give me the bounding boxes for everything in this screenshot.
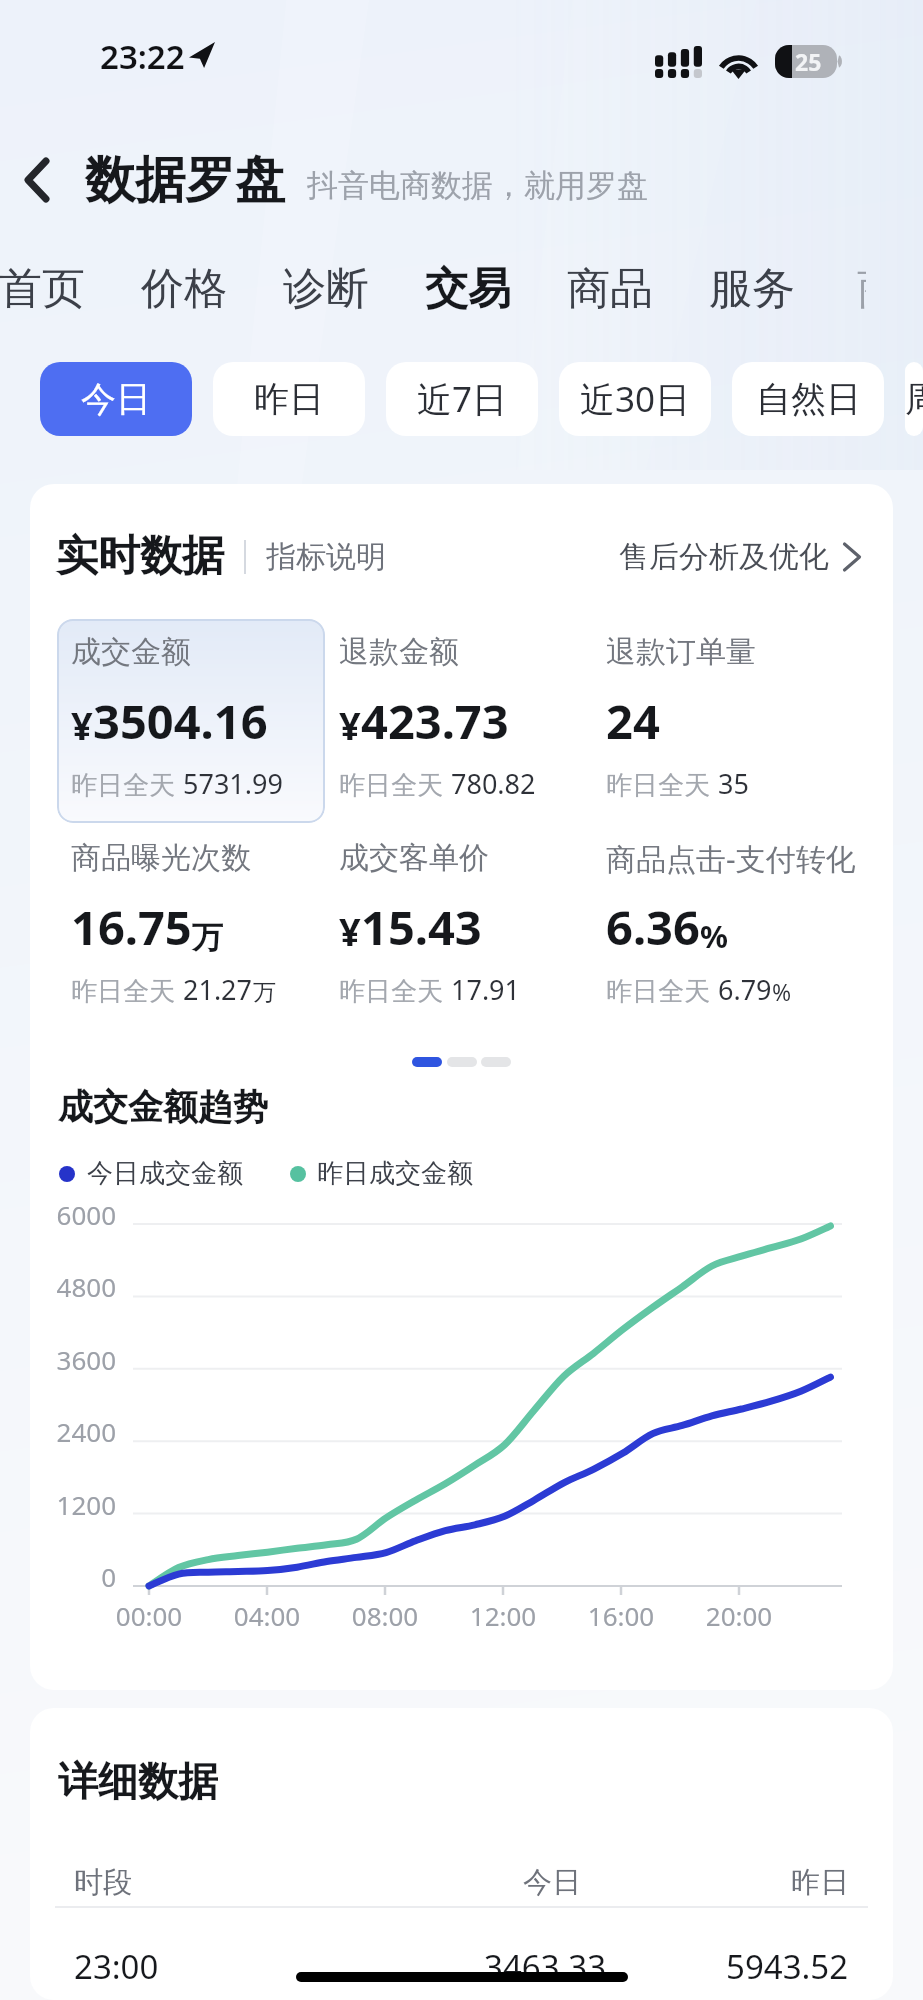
- button[interactable]: 退款金额: [325, 619, 592, 823]
- button[interactable]: 商品曝光次数: [57, 825, 325, 1029]
- staticText: 1200: [30, 1487, 116, 1522]
- staticText: 数据罗盘: [85, 149, 285, 212]
- staticText: 万: [192, 918, 223, 957]
- button[interactable]: 商品: [539, 248, 681, 330]
- staticText: 今日: [523, 1864, 581, 1901]
- staticText: ¥: [71, 699, 93, 751]
- staticText: 成交金额: [71, 633, 191, 671]
- staticText: 昨日全天: [71, 975, 175, 1008]
- staticText: 今日: [81, 377, 151, 421]
- staticText: 3600: [30, 1342, 116, 1377]
- staticText: 首页: [0, 262, 85, 316]
- staticText: 3463.33: [484, 1944, 607, 1989]
- staticText: 23:22: [100, 34, 185, 79]
- staticText: 23:00: [74, 1944, 159, 1989]
- button[interactable]: 成交金额: [57, 619, 325, 823]
- staticText: 15.43: [361, 895, 482, 959]
- button[interactable]: 自然日: [732, 362, 884, 436]
- staticText: 售后分析及优化: [619, 538, 829, 576]
- button[interactable]: 近30日: [559, 362, 711, 436]
- staticText: 780.82: [451, 765, 536, 802]
- staticText: 3504.16: [93, 689, 268, 753]
- staticText: 商: [857, 262, 866, 316]
- staticText: 6.36: [606, 895, 700, 959]
- button[interactable]: 周: [905, 362, 923, 436]
- button[interactable]: 诊断: [255, 248, 397, 330]
- staticText: 5943.52: [726, 1944, 849, 1989]
- staticText: 00:00: [89, 1598, 209, 1633]
- staticText: 诊断: [283, 262, 369, 316]
- staticText: 万: [253, 978, 276, 1007]
- staticText: 详细数据: [58, 1756, 218, 1804]
- button[interactable]: 成交客单价: [325, 825, 592, 1029]
- staticText: 服务: [709, 262, 795, 316]
- staticText: 自然日: [756, 377, 861, 421]
- staticText: 商品: [567, 262, 653, 316]
- staticText: 抖音电商数据，就用罗盘: [307, 166, 648, 205]
- staticText: 0: [30, 1559, 116, 1594]
- staticText: 时段: [74, 1864, 132, 1901]
- staticText: 5731.99: [183, 765, 283, 802]
- staticText: 价格: [141, 262, 227, 316]
- staticText: 17.91: [451, 971, 521, 1008]
- staticText: 423.73: [361, 689, 509, 753]
- staticText: 昨日全天: [606, 769, 710, 802]
- staticText: 6.79: [718, 971, 772, 1008]
- staticText: 24: [606, 689, 660, 753]
- staticText: 商品点击-支付转化: [606, 838, 856, 879]
- staticText: %: [700, 915, 728, 957]
- staticText: 昨日: [791, 1864, 849, 1901]
- staticText: 21.27: [183, 971, 253, 1008]
- staticText: 指标说明: [266, 538, 386, 576]
- staticText: 2400: [30, 1414, 116, 1449]
- staticText: 商品曝光次数: [71, 839, 251, 877]
- button[interactable]: 售后分析及优化: [619, 538, 861, 576]
- button[interactable]: 退款订单量: [592, 619, 893, 823]
- button[interactable]: 近7日: [386, 362, 538, 436]
- button[interactable]: 价格: [113, 248, 255, 330]
- staticText: 昨日: [254, 377, 324, 421]
- staticText: 20:00: [679, 1598, 799, 1633]
- button[interactable]: 交易: [397, 248, 539, 330]
- button[interactable]: 商: [823, 248, 894, 330]
- staticText: 近7日: [417, 375, 508, 423]
- button[interactable]: 服务: [681, 248, 823, 330]
- staticText: 交易: [425, 262, 511, 316]
- staticText: ¥: [339, 905, 361, 957]
- staticText: 35: [718, 765, 749, 802]
- staticText: 昨日全天: [339, 769, 443, 802]
- staticText: 成交客单价: [339, 839, 489, 877]
- staticText: 昨日全天: [606, 975, 710, 1008]
- staticText: 25: [795, 46, 822, 77]
- button[interactable]: 首页: [0, 248, 113, 330]
- staticText: 昨日全天: [339, 975, 443, 1008]
- staticText: 周: [905, 377, 923, 421]
- staticText: 退款订单量: [606, 633, 756, 671]
- other: Wi-Fi: [718, 47, 759, 77]
- staticText: 04:00: [207, 1598, 327, 1633]
- staticText: 昨日全天: [71, 769, 175, 802]
- staticText: 4800: [30, 1269, 116, 1304]
- staticText: 08:00: [325, 1598, 445, 1633]
- staticText: 今日成交金额: [87, 1157, 243, 1190]
- staticText: 昨日成交金额: [317, 1157, 473, 1190]
- staticText: 6000: [30, 1197, 116, 1232]
- staticText: 成交金额趋势: [58, 1085, 268, 1129]
- button[interactable]: 昨日: [213, 362, 365, 436]
- staticText: ¥: [339, 699, 361, 751]
- button[interactable]: 商品点击-支付转化: [592, 825, 893, 1029]
- staticText: 16.75: [71, 895, 192, 959]
- staticText: 退款金额: [339, 633, 459, 671]
- staticText: 实时数据: [56, 530, 224, 583]
- staticText: 12:00: [443, 1598, 563, 1633]
- staticText: %: [772, 976, 792, 1007]
- staticText: 近30日: [580, 375, 691, 423]
- staticText: 16:00: [561, 1598, 681, 1633]
- button[interactable]: 今日: [40, 362, 192, 436]
- button[interactable]: Back: [0, 136, 72, 224]
